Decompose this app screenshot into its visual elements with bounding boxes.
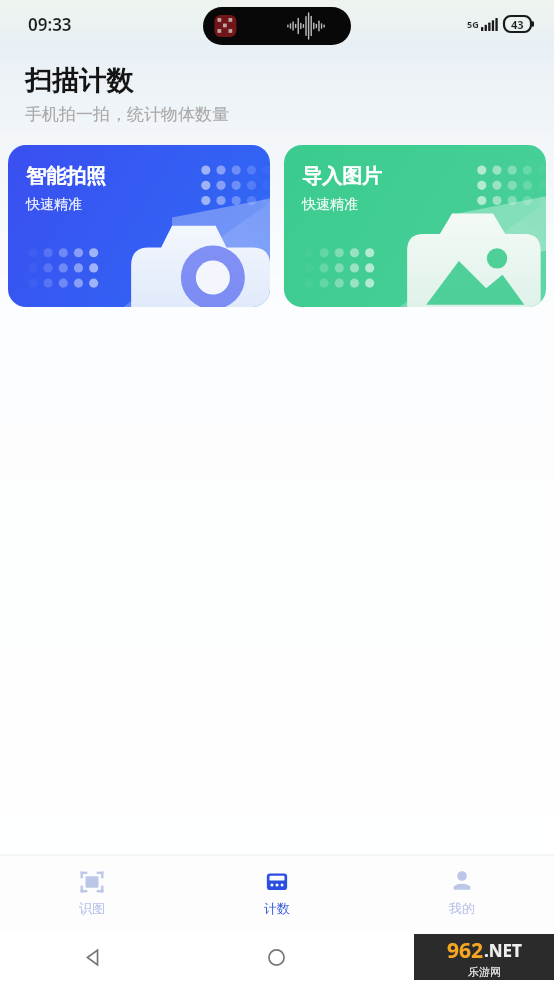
staticText: 43 — [511, 17, 524, 32]
button[interactable]: 导入图片 — [284, 145, 546, 307]
staticText: 智能拍照 — [26, 164, 106, 189]
staticText: 快速精准 — [26, 196, 82, 214]
staticText: 我的 — [449, 900, 475, 916]
staticText: 962 — [447, 936, 484, 965]
staticText: 5G — [467, 18, 479, 30]
staticText: 09:33 — [28, 13, 72, 36]
staticText: 手机拍一拍，统计物体数量 — [25, 104, 229, 125]
button[interactable]: Home — [184, 930, 369, 984]
staticText: 导入图片 — [302, 164, 382, 189]
staticText: .NET — [484, 939, 522, 962]
staticText: 识图 — [79, 900, 105, 916]
button[interactable]: 识图 — [0, 855, 184, 930]
staticText: 扫描计数 — [25, 64, 133, 98]
button[interactable]: 我的 — [369, 855, 554, 930]
button[interactable]: Back — [0, 930, 184, 984]
staticText: 乐游网 — [468, 965, 501, 979]
button[interactable]: Recents — [369, 930, 554, 984]
button[interactable]: 计数 — [184, 855, 369, 930]
button[interactable]: 智能拍照 — [8, 145, 270, 307]
staticText: 计数 — [264, 900, 290, 916]
staticText: 快速精准 — [302, 196, 358, 214]
